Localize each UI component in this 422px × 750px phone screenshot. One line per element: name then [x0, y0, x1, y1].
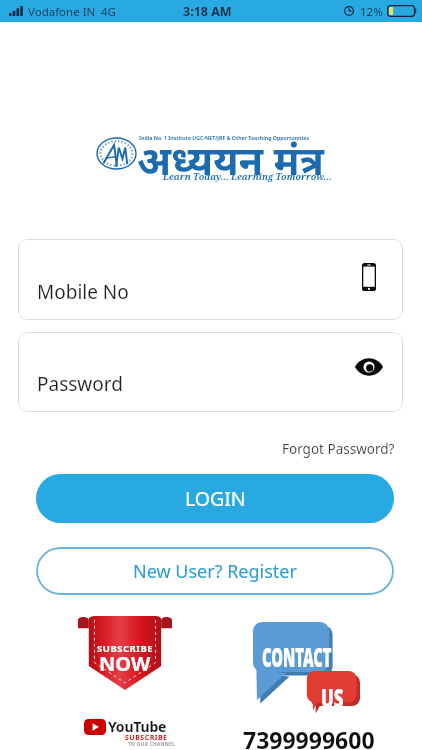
- staticText: TO OUR CHANNEL: [128, 741, 175, 748]
- staticText: SUBSCRIBE: [97, 642, 154, 655]
- staticText: Vodafone IN: [28, 4, 96, 20]
- button[interactable]: LOGIN: [36, 474, 394, 523]
- button[interactable]: Password: [18, 332, 403, 412]
- staticText: US: [321, 679, 344, 715]
- other: Mobile number: [362, 263, 376, 291]
- staticText: SUBSCRIBE: [125, 733, 168, 743]
- button[interactable]: Mobile No: [18, 239, 403, 320]
- staticText: India No. 1 Institute UGC-NET/JRF & Othe…: [139, 134, 310, 141]
- staticText: 12%: [360, 4, 383, 20]
- staticText: Learn Today... Learning Tomorrow...: [163, 170, 332, 182]
- staticText: Forgot Password?: [282, 440, 395, 458]
- staticText: 4G: [101, 4, 116, 20]
- staticText: NOW: [99, 650, 151, 677]
- staticText: LOGIN: [185, 485, 246, 512]
- staticText: 3:18 AM: [183, 3, 232, 20]
- staticText: CONTACT: [262, 638, 332, 674]
- staticText: अध्ययन मंत्र: [137, 132, 324, 186]
- staticText: Password: [37, 371, 123, 397]
- staticText: New User? Register: [133, 559, 297, 584]
- button[interactable]: New User? Register: [36, 547, 394, 595]
- button[interactable]: Forgot Password?: [272, 435, 405, 463]
- staticText: 7399999600: [243, 724, 375, 750]
- staticText: Mobile No: [37, 279, 129, 305]
- other: Show password: [355, 359, 383, 375]
- staticText: YouTube: [108, 717, 167, 736]
